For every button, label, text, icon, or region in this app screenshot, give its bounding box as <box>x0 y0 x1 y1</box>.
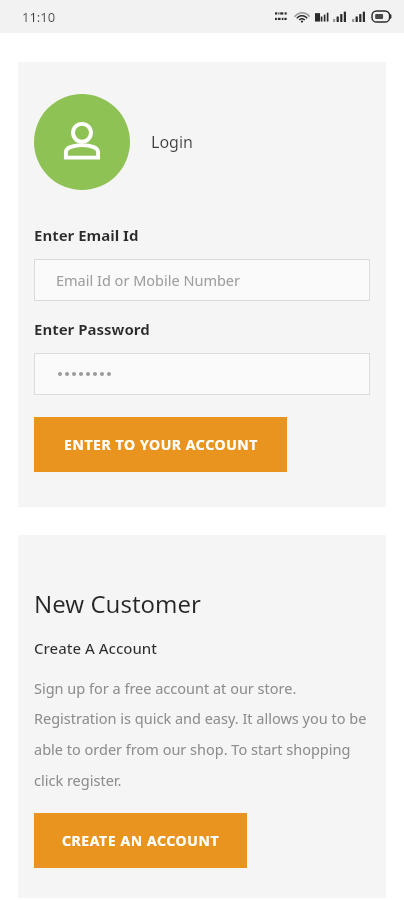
staticText: Login <box>151 131 193 153</box>
staticText: Create A Account <box>34 638 158 658</box>
staticText: Sign up for a free account at our store.… <box>34 678 370 791</box>
button[interactable]: Account avatar <box>34 94 130 190</box>
button[interactable]: Password input <box>34 353 370 395</box>
button[interactable]: Email Id or Mobile Number <box>34 259 370 301</box>
button[interactable]: ENTER TO YOUR ACCOUNT <box>34 417 287 472</box>
staticText: 11:10 <box>22 8 56 26</box>
staticText: Email Id or Mobile Number <box>56 270 241 290</box>
staticText: New Customer <box>34 587 201 620</box>
staticText: Enter Email Id <box>34 225 139 245</box>
staticText: ENTER TO YOUR ACCOUNT <box>64 435 258 454</box>
staticText: CREATE AN ACCOUNT <box>62 831 220 850</box>
staticText: Enter Password <box>34 319 150 339</box>
button[interactable]: CREATE AN ACCOUNT <box>34 813 247 868</box>
